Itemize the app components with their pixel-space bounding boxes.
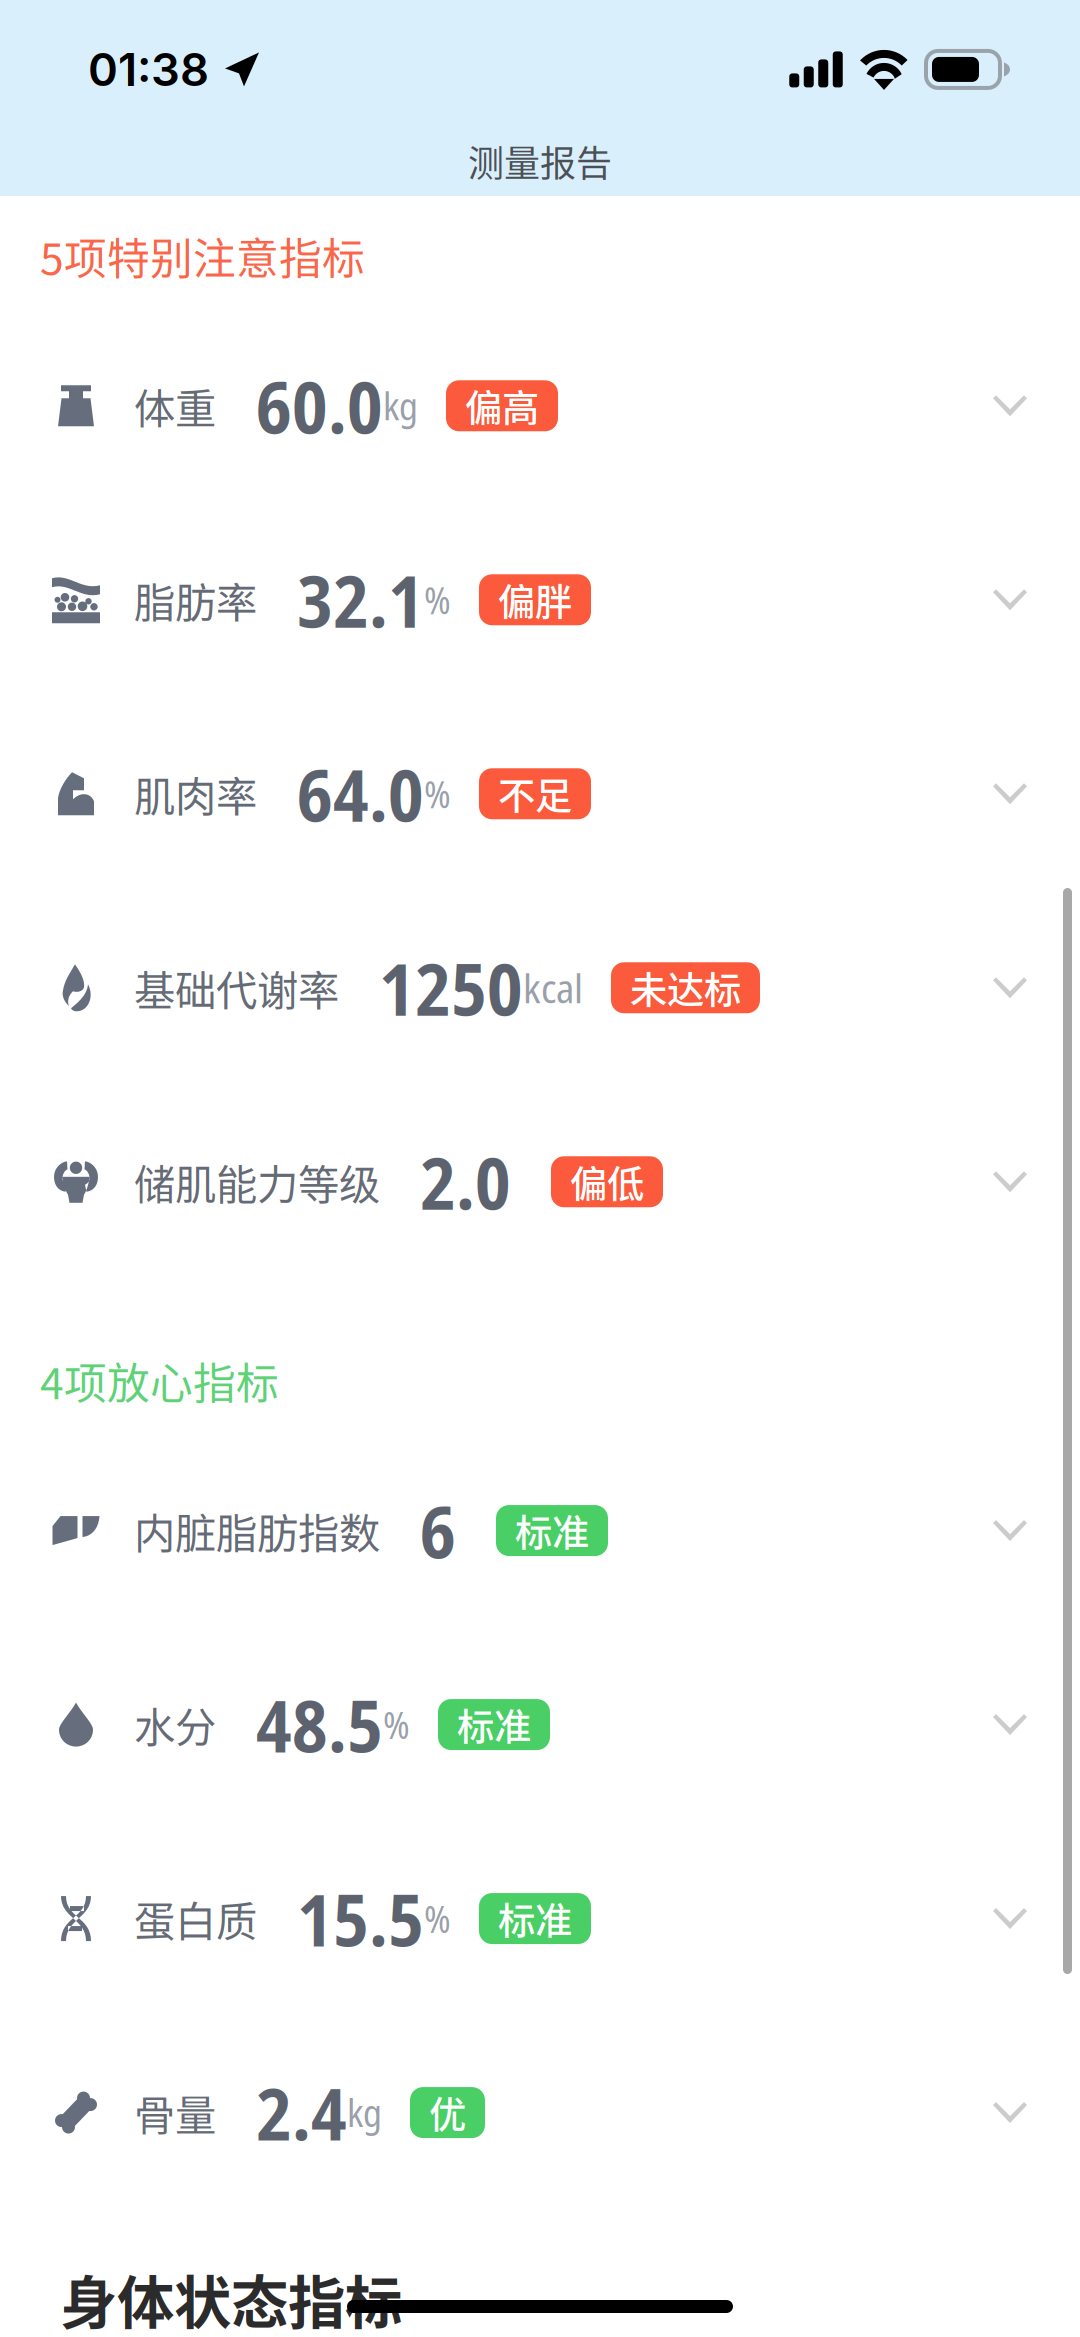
button[interactable]: 水分 [0, 1628, 1080, 1822]
staticText: 2.0 [420, 1133, 511, 1231]
button[interactable]: 骨量 [0, 2016, 1080, 2210]
staticText: kg [347, 2087, 382, 2138]
staticText: 2.4 [256, 2063, 347, 2162]
staticText: 48.5 [256, 1675, 383, 1774]
staticText: % [424, 574, 451, 625]
staticText: 偏胖 [498, 573, 572, 627]
staticText: % [424, 768, 451, 819]
staticText: 偏低 [570, 1155, 644, 1209]
staticText: 32.1 [297, 551, 424, 649]
button[interactable]: 基础代谢率 [0, 891, 1080, 1085]
staticText: 15.5 [297, 1869, 424, 1968]
staticText: 储肌能力等级 [134, 1152, 380, 1212]
staticText: 身体状态指标 [60, 2257, 402, 2337]
staticText: 60.0 [256, 357, 383, 455]
staticText: 蛋白质 [134, 1889, 257, 1948]
staticText: 内脏脂肪指数 [134, 1501, 380, 1560]
button[interactable]: 脂肪率 [0, 503, 1080, 697]
staticText: 优 [429, 2085, 466, 2140]
staticText: 标准 [457, 1697, 531, 1752]
staticText: 标准 [515, 1503, 589, 1558]
staticText: 4项放心指标 [40, 1350, 279, 1412]
button[interactable]: 体重 [0, 309, 1080, 503]
staticText: 骨量 [134, 2083, 216, 2142]
staticText: kcal [523, 960, 583, 1015]
staticText: 未达标 [630, 961, 741, 1015]
staticText: 偏高 [465, 379, 539, 433]
staticText: 体重 [134, 376, 216, 436]
staticText: 标准 [498, 1891, 572, 1946]
staticText: 1250 [379, 939, 523, 1037]
staticText: 脂肪率 [134, 570, 257, 630]
button[interactable]: 内脏脂肪指数 [0, 1434, 1080, 1628]
staticText: 不足 [498, 767, 572, 821]
staticText: 5项特别注意指标 [40, 225, 365, 287]
staticText: % [383, 1699, 410, 1750]
staticText: % [424, 1893, 451, 1944]
staticText: 肌肉率 [134, 764, 257, 824]
staticText: 64.0 [297, 745, 424, 843]
staticText: 测量报告 [468, 135, 612, 187]
button[interactable]: 储肌能力等级 [0, 1085, 1080, 1279]
button[interactable]: 蛋白质 [0, 1822, 1080, 2016]
staticText: 01:38 [88, 42, 209, 97]
staticText: 6 [420, 1481, 456, 1580]
button[interactable]: 肌肉率 [0, 697, 1080, 891]
staticText: kg [383, 380, 418, 431]
staticText: 水分 [134, 1695, 216, 1754]
staticText: 基础代谢率 [134, 958, 339, 1018]
